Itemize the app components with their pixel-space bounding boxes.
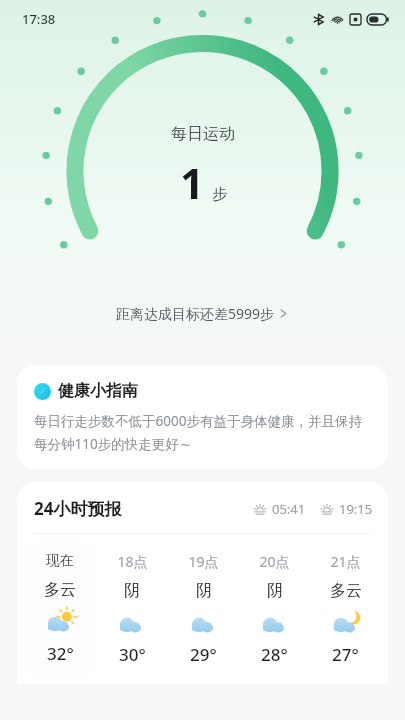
button[interactable]: 现在	[24, 542, 96, 675]
staticText: 1	[180, 154, 205, 211]
staticText: 19点	[188, 552, 219, 571]
other: 健康小指南图标	[34, 383, 51, 400]
staticText: 17:38	[22, 10, 56, 28]
staticText: 多云	[44, 580, 76, 600]
staticText: 阴	[267, 581, 283, 601]
staticText: 多云	[330, 581, 362, 601]
staticText: 24小时预报	[34, 497, 122, 520]
staticText: 32°	[47, 642, 74, 665]
staticText: 阴	[124, 581, 140, 601]
staticText: 阴	[196, 581, 212, 601]
staticText: 27°	[332, 643, 359, 666]
staticText: 05:41	[272, 500, 306, 518]
staticText: 19:15	[339, 500, 373, 518]
staticText: 步	[212, 185, 227, 204]
button[interactable]: 19点	[168, 542, 239, 676]
staticText: 20点	[259, 552, 290, 571]
button[interactable]: 21点	[310, 542, 381, 676]
button[interactable]: 距离达成目标还差5999步	[0, 300, 405, 327]
staticText: 18点	[117, 552, 148, 571]
other: 日出日落	[320, 502, 334, 516]
staticText: 每日行走步数不低于6000步有益于身体健康，并且保持每分钟110步的快走更好～	[34, 412, 371, 453]
staticText: 30°	[119, 643, 146, 666]
staticText: 距离达成目标还差5999步	[116, 304, 275, 323]
button[interactable]: 健康小指南图标	[17, 365, 388, 469]
button[interactable]: 20点	[239, 542, 310, 676]
other: 日出日落	[253, 502, 267, 516]
button[interactable]: 24小时预报	[17, 482, 388, 533]
staticText: 现在	[46, 552, 74, 570]
staticText: 28°	[261, 643, 288, 666]
button[interactable]: 18点	[96, 542, 168, 676]
staticText: 29°	[190, 643, 217, 666]
staticText: 每日运动	[171, 124, 235, 144]
staticText: 健康小指南	[58, 381, 138, 401]
staticText: 21点	[330, 552, 361, 571]
